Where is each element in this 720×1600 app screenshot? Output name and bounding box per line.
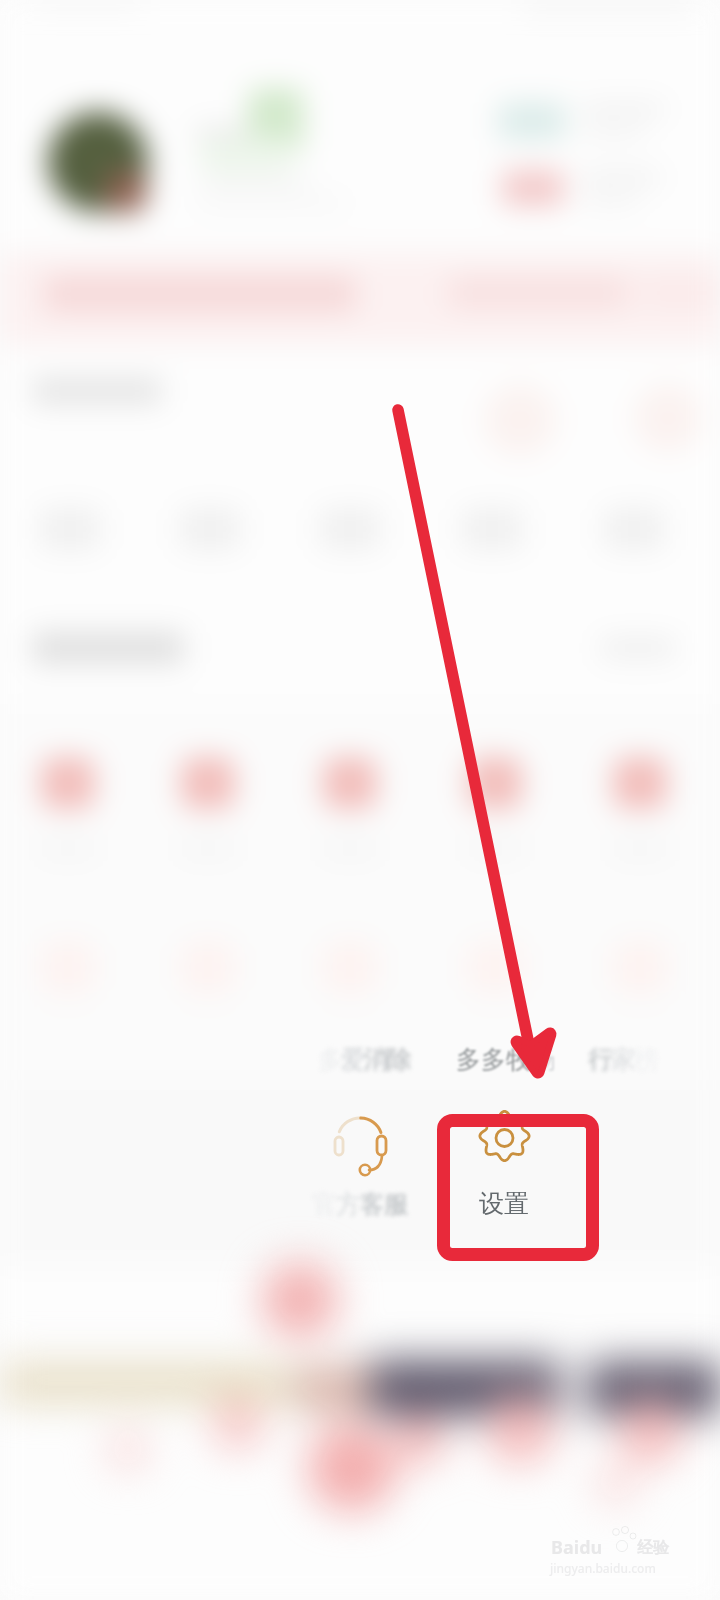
button[interactable]: 小游戏 Mini game bbox=[38, 736, 98, 862]
button[interactable]: 快捷入口 Quick entry bbox=[180, 486, 240, 570]
button[interactable]: 行家榜 bbox=[580, 1038, 670, 1080]
button[interactable]: 小游戏 Mini game bbox=[465, 920, 525, 1046]
button[interactable]: 快捷入口 Quick entry bbox=[604, 486, 664, 570]
button[interactable]: 快捷入口 Quick entry bbox=[320, 486, 380, 570]
button[interactable]: 小游戏 Mini game bbox=[320, 736, 380, 862]
button[interactable]: 多多牧场 bbox=[450, 1038, 550, 1080]
button[interactable]: 设置 Settings bbox=[444, 1114, 594, 1256]
button[interactable]: 小游戏 Mini game bbox=[604, 736, 664, 862]
button[interactable]: 小游戏 Mini game bbox=[178, 736, 238, 862]
button[interactable]: 快捷入口 Quick entry bbox=[40, 486, 100, 570]
button[interactable]: 个人主页 Profile bbox=[0, 78, 470, 250]
button[interactable]: 爱消除 bbox=[330, 1038, 420, 1080]
button[interactable]: 官方客服 Customer service bbox=[310, 1108, 414, 1228]
button[interactable]: 优惠活动 Promotion banner bbox=[0, 254, 720, 344]
button[interactable]: 快捷入口 Quick entry bbox=[462, 486, 522, 570]
button[interactable]: 小游戏 Mini game bbox=[465, 736, 525, 862]
